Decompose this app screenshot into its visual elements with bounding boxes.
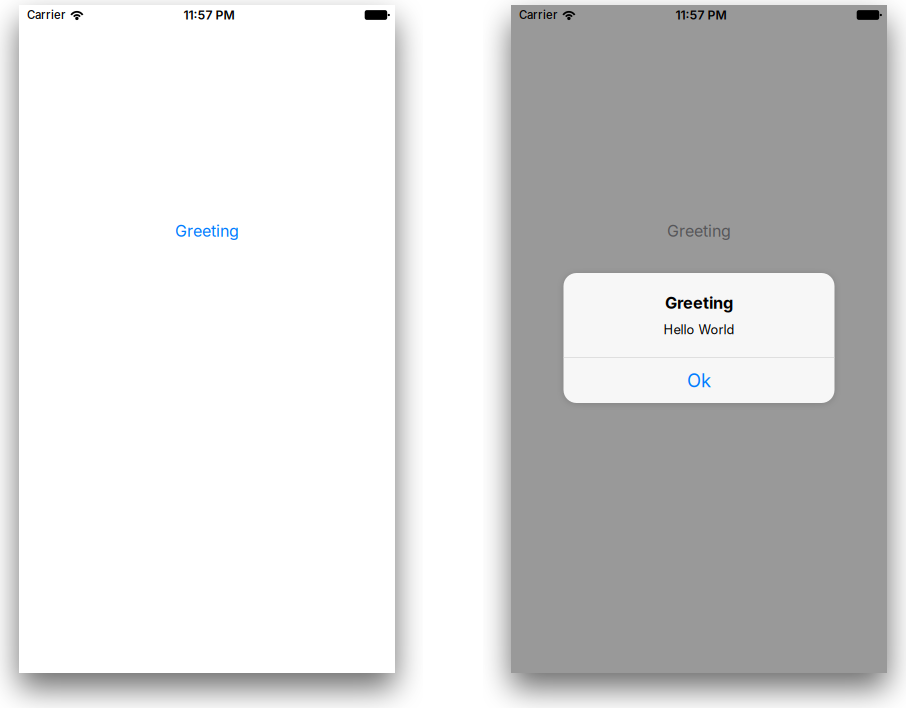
staticText: Greeting	[667, 221, 731, 241]
button[interactable]: Greeting	[19, 221, 395, 241]
staticText: Greeting	[175, 221, 239, 241]
staticText: Carrier	[27, 8, 65, 22]
staticText: Ok	[687, 369, 711, 392]
button[interactable]: Ok	[563, 358, 834, 403]
staticText: Hello World	[663, 322, 734, 337]
staticText: Carrier	[519, 8, 557, 22]
staticText: Greeting	[665, 293, 733, 313]
staticText: 11:57 PM	[675, 8, 726, 22]
button[interactable]: Greeting	[511, 221, 887, 241]
staticText: 11:57 PM	[183, 8, 234, 22]
